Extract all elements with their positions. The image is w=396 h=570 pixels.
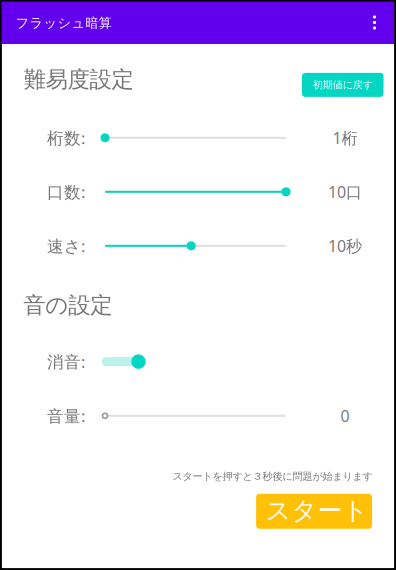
staticText: 口数: — [47, 180, 85, 203]
button[interactable]: 初期値に戻す — [302, 73, 383, 97]
staticText: 1桁 — [332, 127, 357, 149]
staticText: 10口 — [328, 181, 362, 203]
staticText: 難易度設定 — [23, 65, 133, 94]
staticText: 音の設定 — [23, 291, 112, 319]
staticText: 初期値に戻す — [313, 78, 373, 91]
staticText: スタート — [266, 495, 369, 526]
staticText: 0 — [340, 405, 349, 427]
staticText: フラッシュ暗算 — [15, 15, 111, 31]
staticText: 音量: — [47, 404, 85, 427]
staticText: 10秒 — [328, 235, 362, 257]
button[interactable]: スタート — [256, 494, 372, 529]
staticText: 消音: — [47, 350, 85, 373]
staticText: 桁数: — [47, 126, 85, 149]
staticText: 速さ: — [47, 234, 85, 257]
button[interactable]: More options — [356, 3, 392, 41]
button[interactable]: Mute — [101, 349, 153, 375]
staticText: スタートを押すと３秒後に問題が始まります — [172, 470, 372, 483]
